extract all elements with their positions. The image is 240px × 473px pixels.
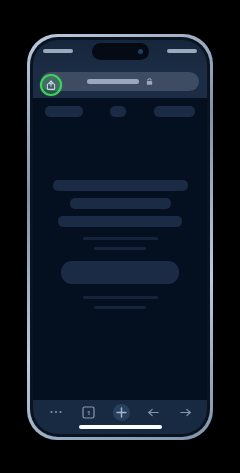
button[interactable]: Back xyxy=(137,400,169,424)
staticText: 1 xyxy=(87,409,91,417)
button[interactable]: More options xyxy=(39,400,72,424)
button[interactable] xyxy=(41,72,199,91)
button[interactable]: Tabs xyxy=(72,400,105,424)
button[interactable]: New tab xyxy=(105,400,137,424)
button[interactable]: Forward xyxy=(169,400,201,424)
button[interactable]: Share xyxy=(38,72,64,98)
